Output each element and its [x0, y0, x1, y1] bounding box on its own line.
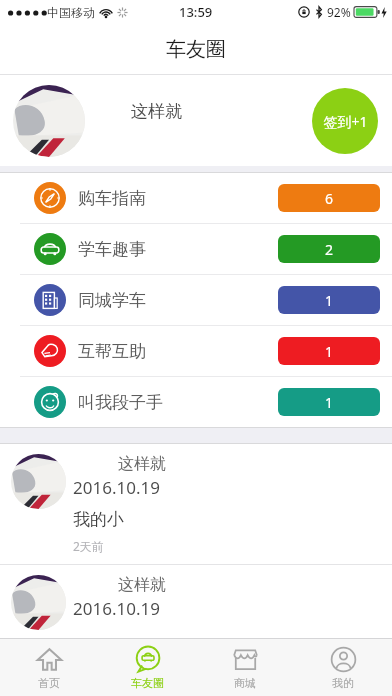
button[interactable]: 车友圈: [98, 639, 196, 696]
button[interactable]: 我的: [294, 639, 392, 696]
staticText: 同城学车: [78, 290, 146, 311]
staticText: 学车趣事: [78, 239, 146, 260]
staticText: 车友圈: [166, 37, 226, 62]
staticText: 商城: [234, 676, 256, 690]
staticText: 购车指南: [78, 188, 146, 209]
staticText: 签到+1: [323, 112, 368, 131]
staticText: 中国移动: [47, 5, 95, 20]
staticText: 6: [325, 189, 334, 208]
button[interactable]: 同城学车: [0, 275, 392, 325]
staticText: 这样就: [118, 454, 166, 474]
staticText: 叫我段子手: [78, 392, 163, 413]
staticText: 我的小: [73, 509, 124, 530]
staticText: 2天前: [73, 538, 104, 554]
staticText: 1: [325, 393, 334, 412]
staticText: 2016.10.19: [73, 476, 160, 499]
button[interactable]: 首页: [0, 639, 98, 696]
button[interactable]: 商城: [196, 639, 294, 696]
staticText: 这样就: [118, 575, 166, 595]
staticText: 92%: [327, 4, 351, 20]
button[interactable]: 这样就: [0, 444, 392, 564]
staticText: 1: [325, 342, 334, 361]
button[interactable]: 学车趣事: [0, 224, 392, 274]
staticText: 13:59: [179, 3, 213, 21]
button[interactable]: Avatar: [13, 85, 85, 157]
button[interactable]: 购车指南: [0, 173, 392, 223]
staticText: 我的: [332, 676, 354, 690]
button[interactable]: 叫我段子手: [0, 377, 392, 427]
staticText: 互帮互助: [78, 341, 146, 362]
staticText: 首页: [38, 676, 60, 690]
button[interactable]: 签到+1: [312, 88, 378, 154]
staticText: 2016.10.19: [73, 597, 160, 620]
staticText: 2: [325, 240, 334, 259]
staticText: 车友圈: [131, 676, 164, 690]
staticText: 1: [325, 291, 334, 310]
button[interactable]: 这样就: [0, 565, 392, 636]
button[interactable]: 互帮互助: [0, 326, 392, 376]
staticText: 这样就: [131, 101, 182, 122]
